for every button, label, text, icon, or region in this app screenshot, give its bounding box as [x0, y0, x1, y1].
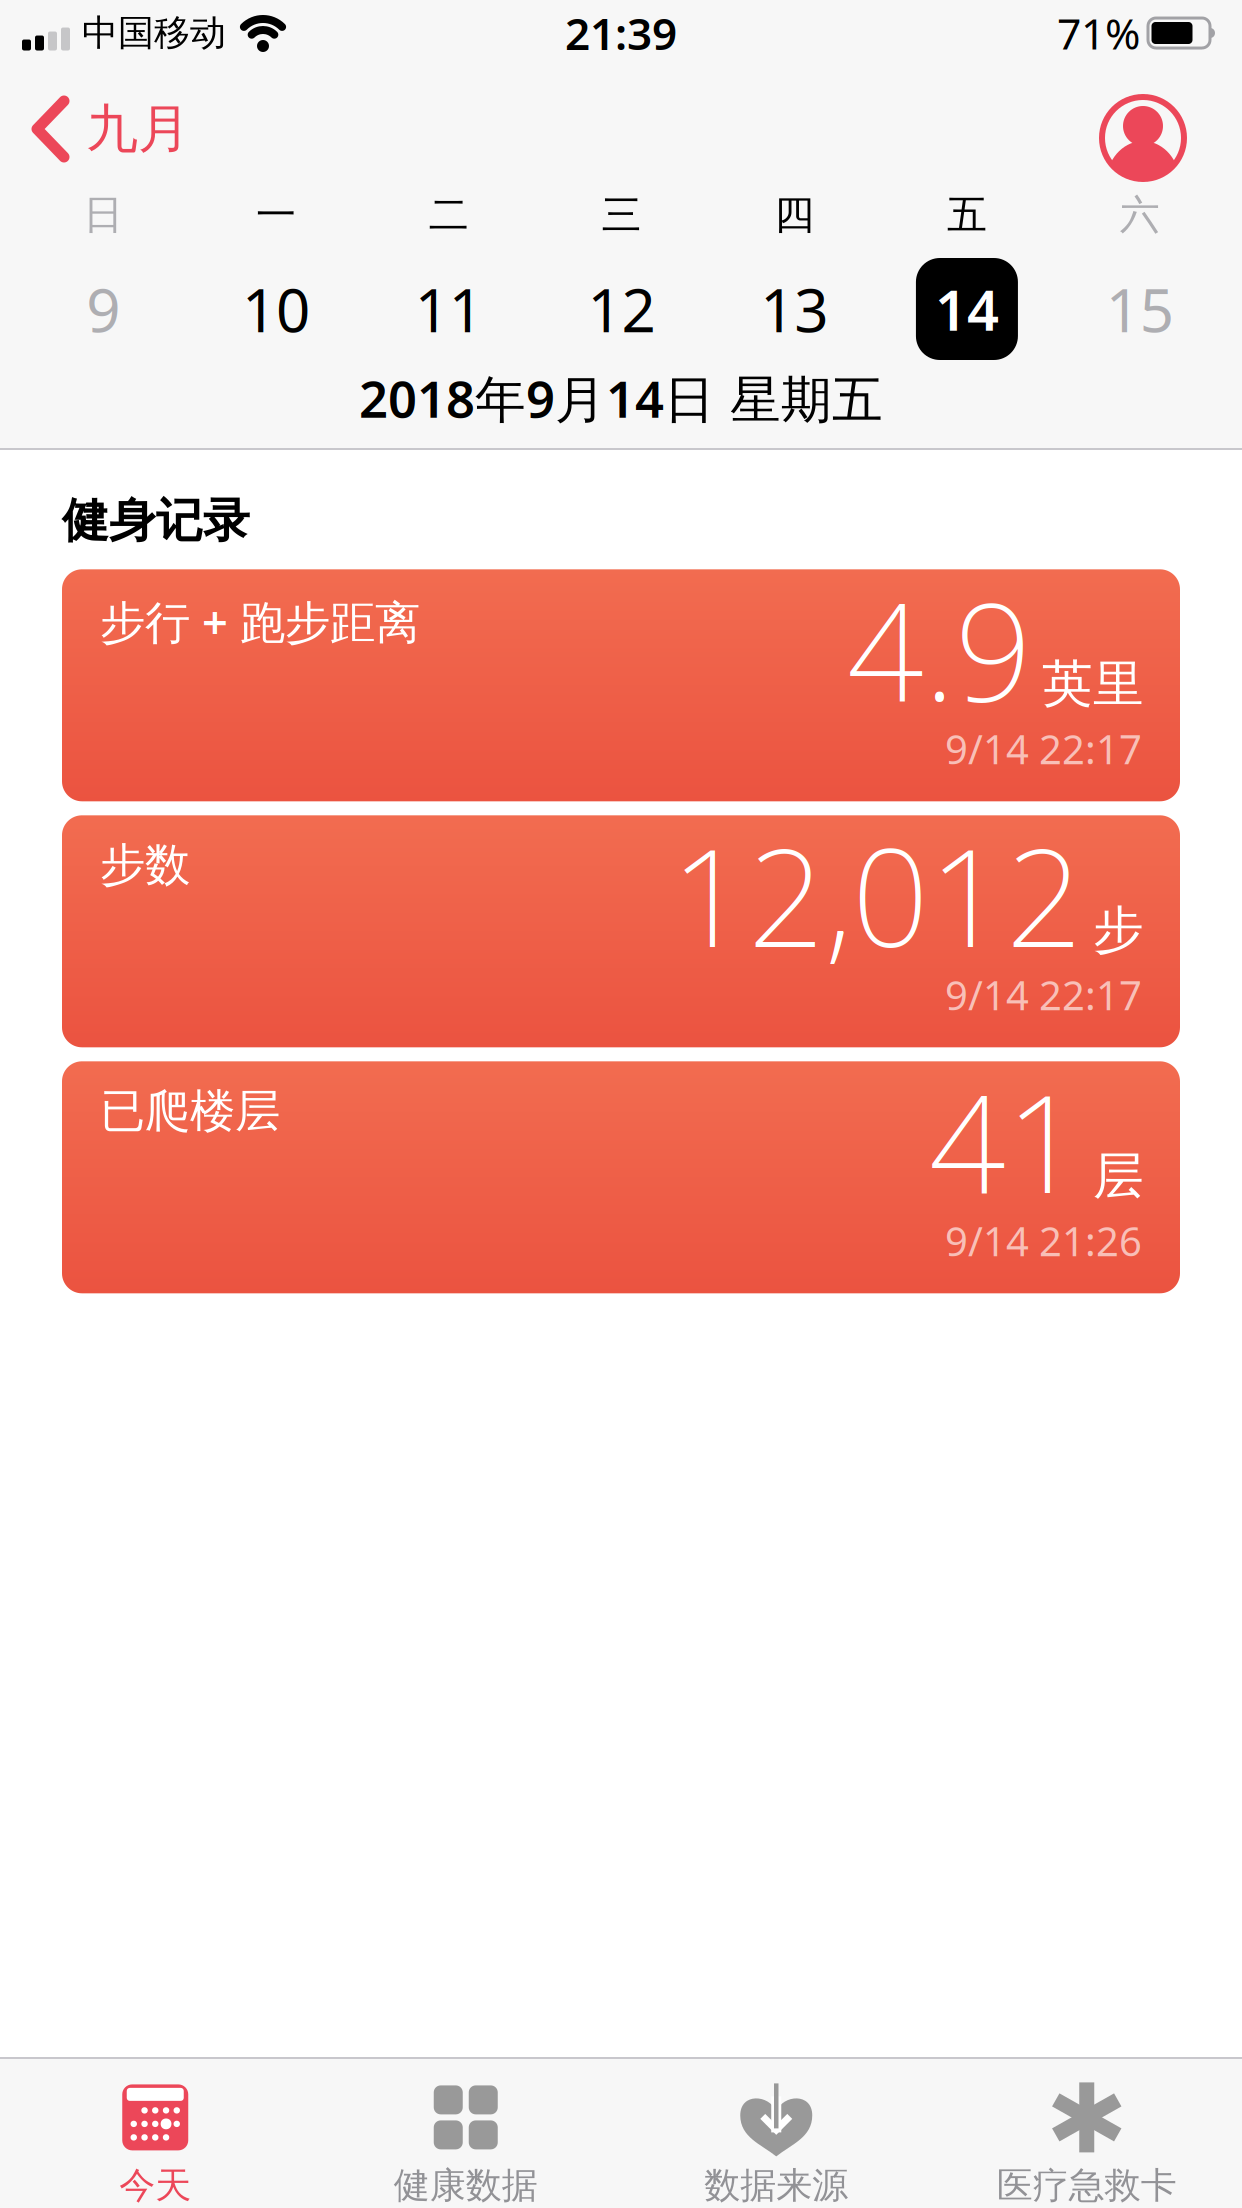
staticText: 英里 [1042, 653, 1144, 715]
staticText: 71% [1057, 5, 1140, 61]
staticText: 四 [774, 190, 814, 239]
staticText: 12,012 [671, 805, 1083, 984]
staticText: 15 [1106, 269, 1174, 349]
button[interactable]: 今天 [0, 2060, 310, 2206]
staticText: 21:39 [565, 4, 677, 62]
staticText: 健身记录 [62, 492, 250, 549]
button[interactable]: 九月 [0, 96, 190, 162]
staticText: 41 [929, 1051, 1083, 1230]
button[interactable]: 健康资料 [1102, 88, 1242, 170]
staticText: 9/14 22:17 [945, 722, 1142, 775]
button[interactable]: 健康数据 [310, 2060, 621, 2206]
staticText: 日 [83, 190, 123, 239]
staticText: 六 [1120, 190, 1160, 239]
staticText: 步数 [100, 837, 190, 893]
staticText: 九月 [86, 97, 190, 161]
button[interactable]: 已爬楼层 [62, 1061, 1180, 1293]
staticText: 9/14 21:26 [945, 1214, 1142, 1267]
staticText: 2018年9月14日 星期五 [359, 364, 883, 432]
staticText: 已爬楼层 [100, 1083, 280, 1139]
staticText: 一 [256, 190, 296, 239]
staticText: 9/14 22:17 [945, 968, 1142, 1021]
staticText: 步行 + 跑步距离 [100, 591, 420, 651]
staticText: 12 [587, 269, 655, 349]
staticText: 13 [760, 269, 828, 349]
staticText: 健康数据 [394, 2163, 538, 2208]
staticText: 11 [415, 269, 483, 349]
staticText: 五 [947, 190, 987, 239]
button[interactable]: 医疗急救卡 [931, 2060, 1242, 2206]
staticText: 层 [1093, 1145, 1144, 1207]
button[interactable]: 步数 [62, 815, 1180, 1047]
staticText: 14 [935, 272, 999, 346]
staticText: 9 [86, 269, 120, 349]
staticText: 中国移动 [82, 11, 226, 55]
staticText: 医疗急救卡 [997, 2163, 1177, 2208]
staticText: 10 [242, 269, 310, 349]
staticText: 步 [1093, 899, 1144, 961]
staticText: 数据来源 [704, 2163, 848, 2208]
staticText: 4.9 [847, 559, 1032, 738]
staticText: 今天 [119, 2163, 191, 2208]
staticText: 三 [601, 190, 641, 239]
button[interactable]: 数据来源 [621, 2060, 931, 2206]
button[interactable]: 步行 + 跑步距离 [62, 569, 1180, 801]
staticText: 二 [429, 190, 469, 239]
